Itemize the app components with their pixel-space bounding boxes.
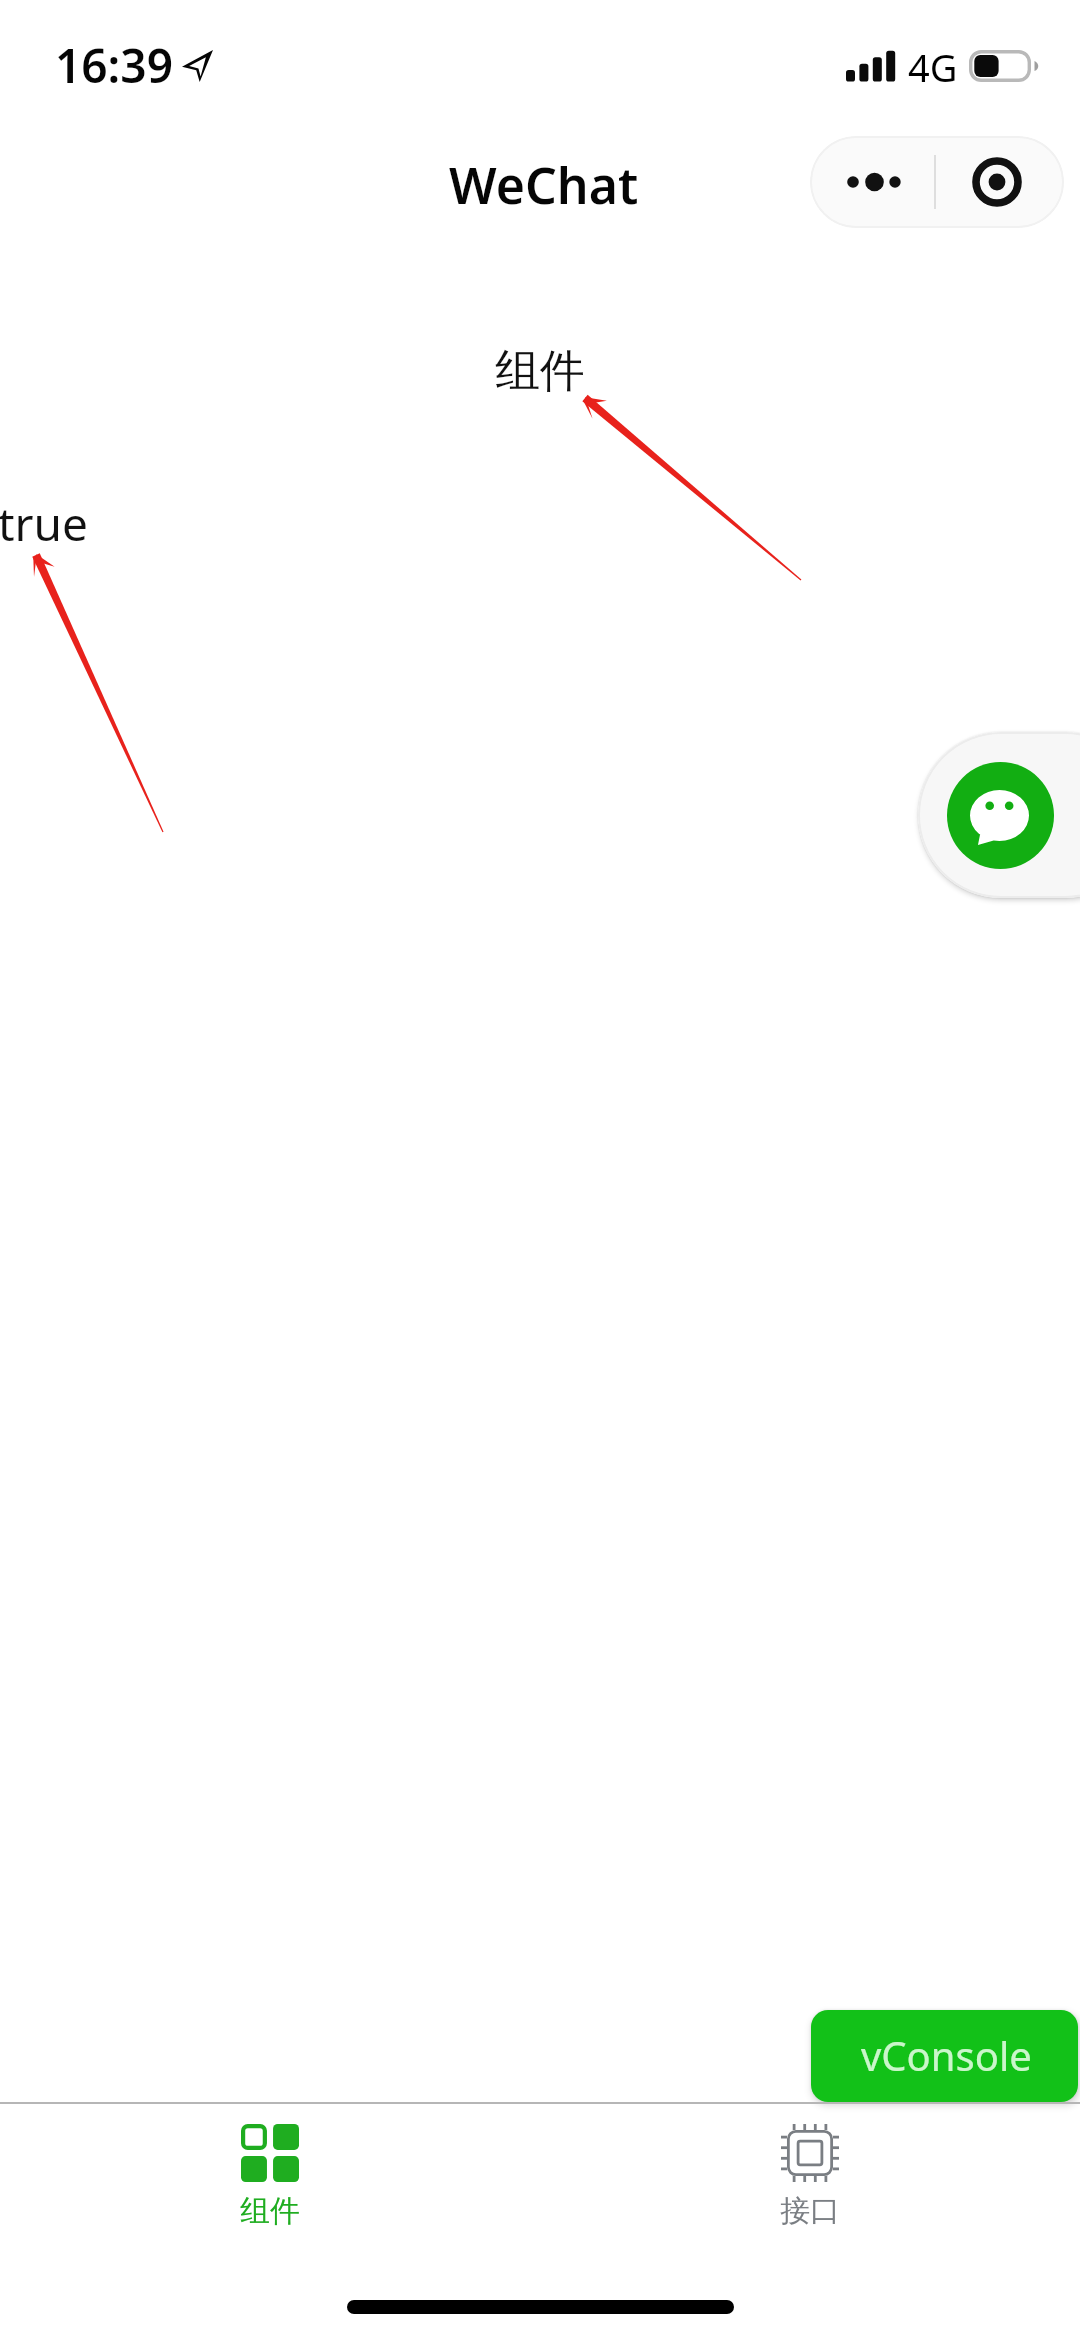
button[interactable]: Close mini program: [936, 136, 1064, 228]
other: Battery: [969, 50, 1039, 82]
staticText: 16:39: [55, 34, 173, 97]
staticText: vConsole: [861, 2028, 1032, 2082]
button[interactable]: Back to WeChat chat: [918, 732, 1080, 898]
staticText: 组件: [495, 343, 585, 400]
staticText: 接口: [780, 2192, 840, 2230]
staticText: 组件: [240, 2192, 300, 2230]
button[interactable]: 组件 tab, selected: [170, 2110, 370, 2234]
other: Cellular signal: [846, 50, 898, 82]
staticText: 4G: [908, 41, 958, 93]
button[interactable]: vConsole: [811, 2010, 1078, 2102]
staticText: true: [0, 492, 88, 555]
button[interactable]: Mini program menu: [810, 136, 1064, 228]
other: Location in use: [182, 50, 213, 82]
button[interactable]: 接口 tab: [710, 2110, 910, 2234]
button[interactable]: More options: [810, 136, 934, 228]
staticText: WeChat: [449, 151, 639, 219]
